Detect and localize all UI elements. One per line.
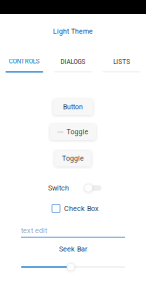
staticText: Toggle — [62, 154, 84, 162]
button[interactable]: CONTROLS — [0, 50, 49, 74]
staticText: LISTS — [113, 58, 130, 65]
staticText: Check Box — [64, 204, 99, 213]
staticText: Switch — [48, 184, 69, 192]
staticText: DIALOGS — [60, 58, 85, 65]
button[interactable]: LISTS — [97, 50, 146, 74]
staticText: Toggle — [66, 128, 88, 136]
staticText: Button — [63, 103, 83, 111]
staticText: text edit — [21, 226, 47, 235]
button[interactable]: Seek Bar — [21, 262, 125, 272]
staticText: CONTROLS — [9, 58, 40, 65]
button[interactable]: Check Box — [52, 202, 99, 214]
staticText: Light Theme — [53, 27, 93, 35]
button[interactable]: Switch — [83, 183, 100, 192]
button[interactable]: DIALOGS — [49, 50, 97, 74]
button[interactable]: Button — [53, 99, 93, 115]
button[interactable]: Toggle — [50, 124, 96, 140]
button[interactable]: text edit — [21, 226, 125, 238]
button[interactable]: Toggle — [54, 150, 91, 166]
staticText: Seek Bar — [59, 245, 87, 253]
